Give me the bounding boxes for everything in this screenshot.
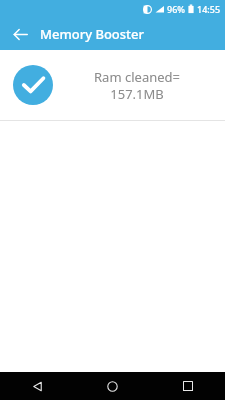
staticText: Memory Booster	[40, 25, 145, 43]
staticText: 96%	[167, 3, 185, 15]
button[interactable]: Back	[7, 21, 33, 47]
button[interactable]: Back	[0, 372, 75, 400]
staticText: Ram cleaned= 157.1MB	[94, 68, 180, 103]
button[interactable]: Recent apps	[150, 372, 225, 400]
staticText: 14:55	[197, 3, 221, 15]
button[interactable]: Home	[75, 372, 150, 400]
button[interactable]: Ram cleaned= 157.1MB	[0, 50, 225, 120]
